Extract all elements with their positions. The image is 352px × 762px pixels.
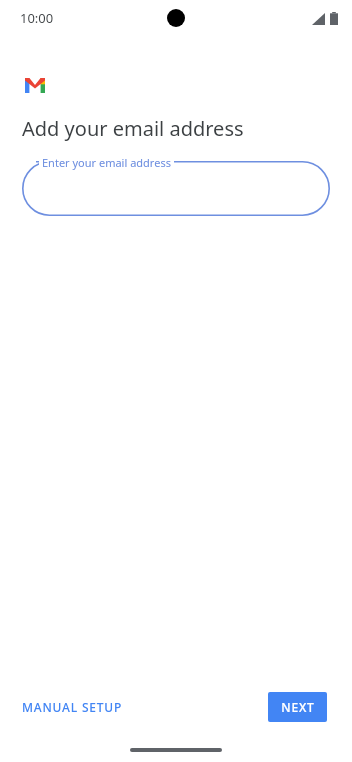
staticText: Enter your email address (42, 155, 171, 170)
button[interactable]: NEXT (268, 692, 327, 722)
staticText: 10:00 (20, 9, 54, 27)
staticText: MANUAL SETUP (22, 699, 123, 715)
other: Gmail (25, 78, 45, 93)
button[interactable]: Enter your email address (22, 161, 330, 216)
staticText: Add your email address (22, 115, 244, 142)
staticText: NEXT (281, 699, 315, 715)
button[interactable]: MANUAL SETUP (0, 689, 135, 725)
